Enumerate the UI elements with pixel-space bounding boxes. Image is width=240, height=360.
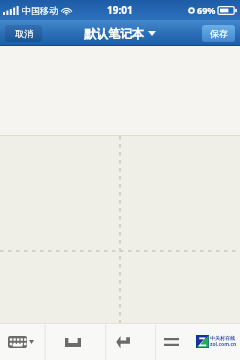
staticText: 中关村在线: [210, 335, 235, 341]
button[interactable]: Return: [108, 329, 138, 355]
staticText: zol.com.cn: [210, 341, 237, 348]
button[interactable]: [0, 136, 240, 323]
button[interactable]: 取消: [5, 25, 42, 42]
staticText: 中国移动: [22, 5, 58, 16]
button[interactable]: 保存: [202, 25, 235, 42]
staticText: 保存: [210, 28, 228, 39]
button[interactable]: Keyboard: [8, 329, 44, 355]
staticText: 默认笔记本: [84, 26, 144, 41]
button[interactable]: 默认笔记本: [84, 26, 156, 41]
button[interactable]: Format: [158, 329, 184, 355]
button[interactable]: Space: [58, 329, 88, 355]
staticText: 19:01: [107, 3, 133, 17]
staticText: 69%: [197, 4, 216, 16]
staticText: 取消: [15, 28, 33, 39]
